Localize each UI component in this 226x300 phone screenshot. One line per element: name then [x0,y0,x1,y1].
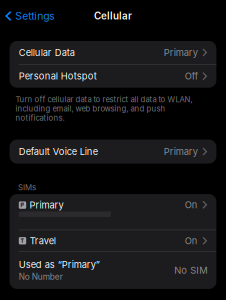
staticText: Used as “Primary” [19,259,100,270]
button[interactable]: Settings [0,7,59,25]
staticText: Default Voice Line [19,146,98,157]
button[interactable]: Default Voice Line [10,139,216,163]
button[interactable]: Cellular Data [10,41,216,64]
staticText: Cellular [94,10,132,22]
staticText: Primary [164,47,198,58]
staticText: SIMs [18,182,36,192]
staticText: Off [185,71,198,82]
button[interactable]: Personal Hotspot [10,65,216,88]
staticText: On [185,199,198,210]
button[interactable]: Used as “Primary” [10,252,216,289]
staticText: Turn off cellular data to restrict all d… [16,95,193,122]
staticText: No Number [19,272,63,282]
staticText: Personal Hotspot [19,71,97,82]
staticText: On [185,235,198,246]
button[interactable]: Primary [10,194,216,230]
staticText: Settings [15,10,54,22]
staticText: Primary [30,199,64,211]
staticText: Primary [164,146,198,157]
button[interactable]: Travel [10,230,216,251]
staticText: Travel [30,235,56,246]
staticText: Cellular Data [19,47,75,58]
staticText: No SIM [174,265,207,276]
